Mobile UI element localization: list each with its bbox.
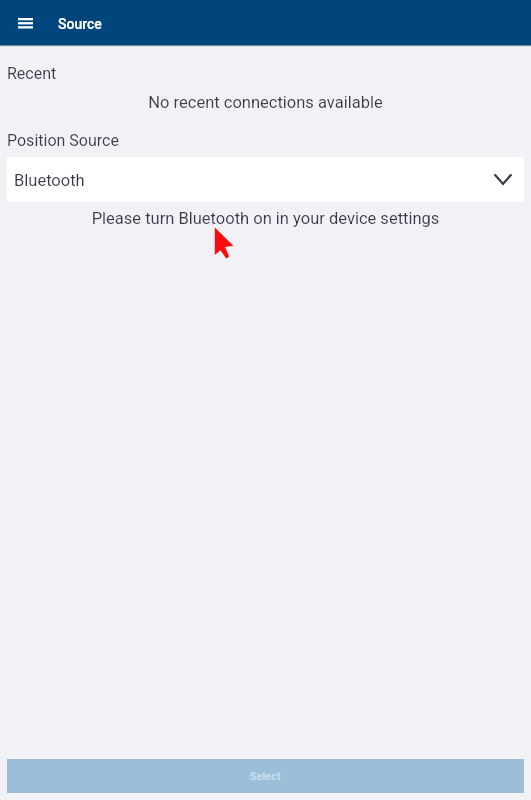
staticText: Please turn Bluetooth on in your device … [0,209,531,228]
staticText: Recent [7,64,57,83]
button[interactable]: Bluetooth [7,157,524,202]
staticText: No recent connections available [0,93,531,112]
button[interactable]: Select [7,759,524,793]
staticText: Position Source [7,131,119,150]
staticText: Bluetooth [14,171,85,190]
button[interactable]: Open navigation menu [0,0,50,45]
staticText: Source [58,16,102,32]
staticText: Select [250,770,281,783]
